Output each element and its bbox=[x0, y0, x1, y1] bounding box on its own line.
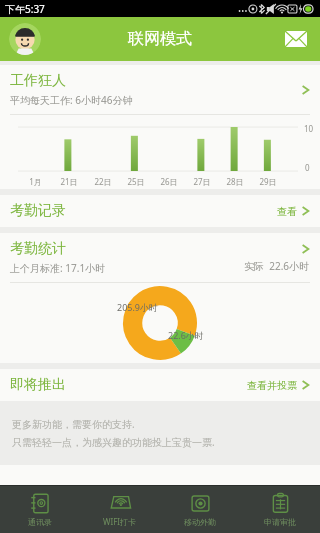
button[interactable]: 考勤记录 bbox=[0, 195, 320, 227]
staticText: 查看并投票 bbox=[247, 379, 297, 392]
staticText: 25日 bbox=[127, 176, 145, 187]
button[interactable]: 即将推出 bbox=[0, 369, 320, 401]
staticText: 0 bbox=[305, 162, 310, 173]
button[interactable]: WIFI打卡 bbox=[80, 486, 160, 533]
staticText: 26日 bbox=[160, 176, 178, 187]
staticText: 实际 22.6小时 bbox=[244, 259, 310, 273]
button[interactable]: 移动外勤 bbox=[160, 486, 240, 533]
staticText: 申请审批 bbox=[264, 517, 296, 527]
staticText: 上个月标准: 17.1小时 bbox=[10, 261, 106, 275]
button[interactable]: 通讯录 bbox=[0, 486, 80, 533]
staticText: 工作狂人 bbox=[10, 72, 66, 90]
staticText: 通讯录 bbox=[28, 517, 52, 527]
staticText: 22日 bbox=[94, 176, 112, 187]
staticText: 28日 bbox=[226, 176, 244, 187]
staticText: 21日 bbox=[60, 176, 78, 187]
staticText: 考勤记录 bbox=[10, 202, 66, 220]
staticText: 平均每天工作: 6小时46分钟 bbox=[10, 93, 133, 107]
staticText: 27日 bbox=[193, 176, 211, 187]
button[interactable]: 考勤统计 bbox=[0, 233, 320, 363]
staticText: 205.9小时 bbox=[117, 301, 159, 313]
staticText: 29日 bbox=[259, 176, 277, 187]
staticText: 即将推出 bbox=[10, 376, 66, 394]
button[interactable]: 工作狂人 bbox=[0, 65, 320, 189]
staticText: 只需轻轻一点，为感兴趣的功能投上宝贵一票. bbox=[12, 435, 215, 449]
staticText: 查看 bbox=[277, 205, 297, 218]
staticText: 移动外勤 bbox=[184, 517, 216, 527]
staticText: 联网模式 bbox=[128, 29, 192, 49]
button[interactable]: Messages bbox=[281, 24, 311, 54]
button[interactable]: Profile bbox=[9, 23, 41, 55]
staticText: 10 bbox=[304, 123, 314, 134]
staticText: 下午5:37 bbox=[5, 2, 45, 16]
button[interactable]: 申请审批 bbox=[240, 486, 320, 533]
staticText: WIFI打卡 bbox=[103, 516, 137, 527]
staticText: 22.6小时 bbox=[168, 329, 204, 341]
staticText: 考勤统计 bbox=[10, 240, 66, 258]
staticText: 更多新功能，需要你的支持. bbox=[12, 417, 135, 431]
staticText: 1月 bbox=[29, 176, 42, 187]
